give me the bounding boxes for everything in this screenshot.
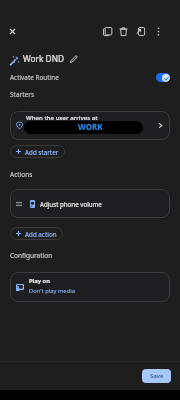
button[interactable]: Play on [10, 272, 170, 302]
staticText: Don't play media [29, 287, 75, 295]
button[interactable]: More options [149, 22, 167, 40]
button[interactable]: Delete [114, 22, 132, 40]
button[interactable]: Add action [10, 227, 63, 240]
staticText: When the user arrives at [26, 113, 98, 121]
staticText: Work DND [23, 53, 65, 64]
button[interactable]: Save [142, 369, 171, 383]
staticText: Starters [10, 90, 35, 99]
button[interactable]: Activate Routine [156, 73, 170, 82]
staticText: Play on [29, 277, 51, 285]
button[interactable]: Add starter [10, 145, 65, 158]
button[interactable]: Duplicate [98, 22, 116, 40]
button[interactable]: Activate Routine [0, 70, 180, 85]
staticText: Actions [10, 170, 33, 179]
staticText: WORK [78, 121, 103, 132]
staticText: Configuration [10, 251, 53, 260]
button[interactable]: Close [3, 22, 21, 40]
staticText: Save [150, 372, 164, 380]
button[interactable]: Rename routine [68, 52, 80, 64]
button[interactable]: Adjust phone volume [10, 189, 170, 218]
button[interactable]: Add to home screen [131, 22, 149, 40]
staticText: Add starter [25, 148, 59, 156]
staticText: Activate Routine [10, 73, 59, 82]
button[interactable]: When the user arrives at [10, 111, 170, 140]
staticText: Adjust phone volume [40, 200, 102, 208]
staticText: Add action [25, 230, 57, 238]
